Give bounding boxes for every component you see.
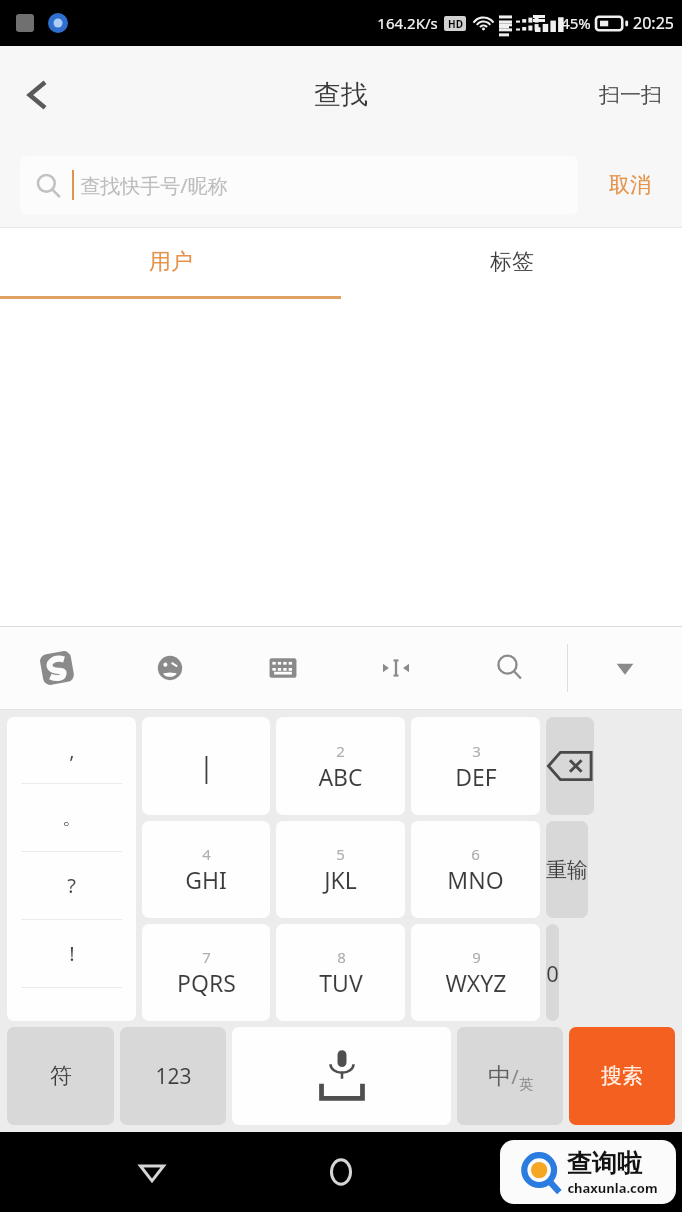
staticText: /	[511, 1063, 519, 1090]
staticText: 取消	[609, 172, 651, 198]
staticText: 0	[546, 958, 559, 988]
button[interactable]: 123	[120, 1027, 226, 1125]
staticText: TUV	[319, 967, 363, 998]
staticText: 20:25	[633, 12, 674, 34]
staticText: GHI	[185, 864, 227, 895]
staticText: !	[69, 940, 75, 967]
button[interactable]: 6	[411, 821, 540, 918]
button[interactable]: Home	[303, 1134, 379, 1210]
button[interactable]: 符	[7, 1027, 114, 1125]
button[interactable]: 中	[457, 1027, 563, 1125]
button[interactable]: |	[142, 717, 270, 815]
button[interactable]: Punctuation	[7, 717, 136, 1021]
button[interactable]: 8	[276, 924, 405, 1021]
button[interactable]: 0	[546, 924, 559, 1021]
staticText: 用户	[149, 248, 193, 276]
button[interactable]: 2	[276, 717, 405, 815]
button[interactable]: 3	[411, 717, 540, 815]
staticText: 标签	[490, 248, 534, 276]
button[interactable]: Back	[0, 57, 76, 133]
staticText: 2	[336, 741, 345, 761]
button[interactable]: Hide keyboard	[568, 627, 682, 709]
button[interactable]: Voice input / space	[232, 1027, 451, 1125]
button[interactable]: 扫一扫	[587, 70, 674, 120]
button[interactable]: 5	[276, 821, 405, 918]
staticText: 查找	[314, 78, 368, 112]
button[interactable]: Recent apps	[493, 1134, 569, 1210]
staticText: PQRS	[177, 967, 236, 998]
staticText: ?	[67, 872, 76, 899]
button[interactable]: 重输	[546, 821, 588, 918]
staticText: 搜索	[601, 1063, 643, 1089]
staticText: 123	[155, 1062, 192, 1091]
staticText: 4	[202, 844, 211, 864]
staticText: DEF	[455, 761, 497, 792]
staticText: 3	[472, 741, 481, 761]
button[interactable]: Back	[114, 1134, 190, 1210]
staticText: 查找快手号/昵称	[80, 172, 228, 199]
staticText: ABC	[318, 761, 363, 792]
staticText: ,	[69, 737, 75, 764]
button[interactable]: Sogou input	[0, 627, 113, 709]
staticText: MNO	[447, 864, 504, 895]
staticText: JKL	[324, 864, 357, 895]
button[interactable]: 查找快手号/昵称	[20, 156, 578, 214]
button[interactable]: Move cursor	[339, 627, 453, 709]
button[interactable]: 9	[411, 924, 540, 1021]
staticText: 6	[471, 844, 480, 864]
staticText: 164.2K/s	[377, 13, 438, 33]
button[interactable]: 标签	[341, 228, 682, 296]
staticText: 符	[50, 1062, 72, 1090]
staticText: 45%	[561, 13, 591, 33]
staticText: 。	[62, 805, 82, 830]
staticText: 查询啦	[567, 1148, 642, 1179]
staticText: 5	[336, 844, 345, 864]
staticText: 9	[472, 947, 481, 967]
staticText: 中	[488, 1062, 511, 1091]
button[interactable]: Keyboard layout	[226, 627, 339, 709]
staticText: 重输	[546, 857, 588, 883]
staticText: 8	[337, 947, 346, 967]
button[interactable]: 搜索	[569, 1027, 675, 1125]
button[interactable]: Search	[453, 627, 567, 709]
staticText: 扫一扫	[599, 82, 662, 108]
staticText: |	[199, 748, 214, 785]
button[interactable]: Emoji	[113, 627, 226, 709]
button[interactable]: 7	[142, 924, 270, 1021]
staticText: 英	[519, 1076, 533, 1094]
staticText: WXYZ	[445, 967, 507, 998]
button[interactable]: Backspace	[546, 717, 594, 815]
button[interactable]: 取消	[578, 143, 682, 227]
button[interactable]: 用户	[0, 228, 341, 296]
staticText: HD	[448, 17, 463, 31]
button[interactable]: 4	[142, 821, 270, 918]
staticText: 7	[202, 947, 211, 967]
staticText: chaxunla.com	[567, 1179, 658, 1197]
